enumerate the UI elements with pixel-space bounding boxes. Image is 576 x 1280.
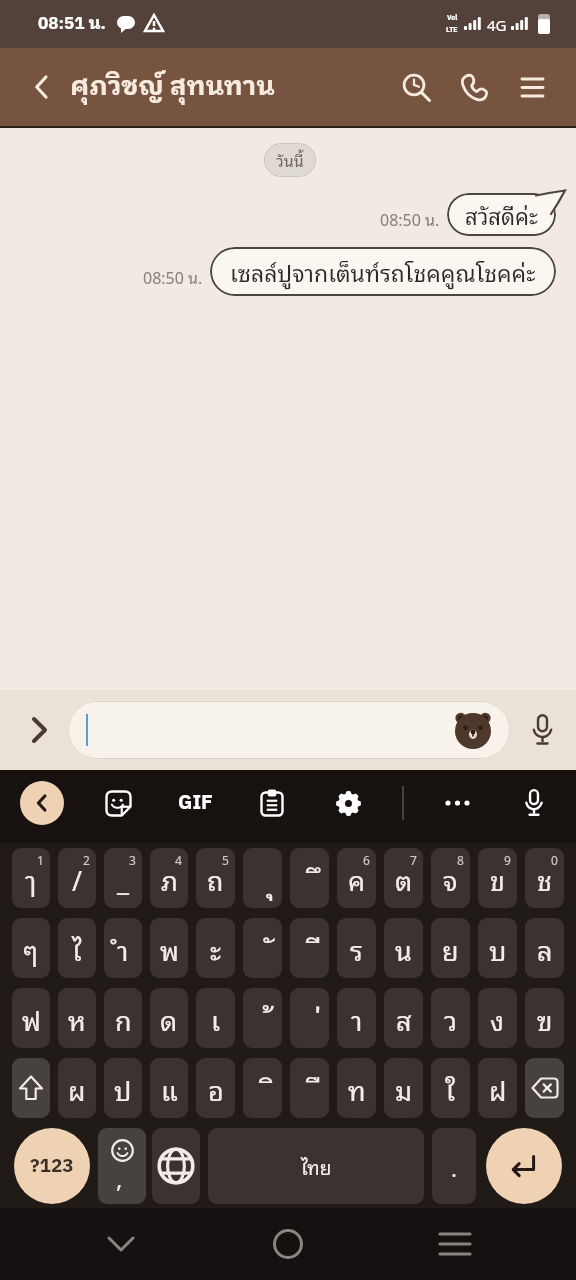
button[interactable] <box>433 1222 477 1266</box>
button[interactable] <box>486 1128 562 1204</box>
button[interactable]: ภ <box>150 848 188 908</box>
button[interactable]: ช <box>525 848 564 908</box>
button[interactable] <box>454 67 494 107</box>
button[interactable]: ๆ <box>12 918 50 978</box>
staticText: 2 <box>83 850 90 869</box>
button[interactable]: ว <box>431 988 470 1048</box>
staticText: ั <box>267 924 275 972</box>
staticText: ๆ <box>23 927 39 970</box>
button[interactable] <box>12 1058 50 1118</box>
staticText: สวัสดีค่ะ <box>465 197 538 232</box>
button[interactable]: ย <box>431 918 470 978</box>
button[interactable]: ใ <box>431 1058 470 1118</box>
button[interactable]: ฟ <box>12 988 50 1048</box>
button[interactable]: _ <box>104 848 142 908</box>
button[interactable]: ง <box>478 988 517 1048</box>
button[interactable]: . <box>432 1128 476 1204</box>
button[interactable]: ไทย <box>208 1128 424 1204</box>
button[interactable]: ถ <box>196 848 235 908</box>
staticText: / <box>72 857 83 900</box>
button[interactable]: ผ <box>58 1058 96 1118</box>
button[interactable] <box>152 1128 200 1204</box>
button[interactable] <box>20 781 64 825</box>
button[interactable]: า <box>337 988 376 1048</box>
staticText: ม <box>395 1067 413 1110</box>
button[interactable]: ส <box>384 988 423 1048</box>
staticText: ิ <box>267 1064 275 1112</box>
button[interactable] <box>522 710 562 750</box>
button[interactable]: แ <box>150 1058 188 1118</box>
button[interactable]: ห <box>58 988 96 1048</box>
button[interactable]: / <box>58 848 96 908</box>
staticText: า <box>351 997 363 1040</box>
button[interactable]: ล <box>525 918 564 978</box>
button[interactable]: ั <box>243 918 282 978</box>
staticText: 08:50 น. <box>380 206 440 232</box>
button[interactable]: วันนี้ <box>276 147 304 173</box>
button[interactable]: ำ <box>104 918 142 978</box>
staticText: ้ <box>267 994 275 1042</box>
button[interactable]: ค <box>337 848 376 908</box>
button[interactable]: ้ <box>243 988 282 1048</box>
button[interactable]: ึ <box>290 848 329 908</box>
staticText: LTE <box>446 24 458 36</box>
button[interactable]: ไ <box>58 918 96 978</box>
button[interactable]: บ <box>478 918 517 978</box>
staticText: ภ <box>161 857 178 900</box>
button[interactable]: ด <box>150 988 188 1048</box>
button[interactable]: ฃ <box>525 988 564 1048</box>
button[interactable] <box>512 67 552 107</box>
button[interactable]: ก <box>104 988 142 1048</box>
button[interactable]: ?123 <box>14 1128 90 1204</box>
button[interactable] <box>86 701 494 759</box>
button[interactable]: สวัสดีค่ะ <box>465 197 538 232</box>
button[interactable] <box>396 67 436 107</box>
button[interactable] <box>99 1222 143 1266</box>
staticText: จ <box>443 857 458 900</box>
button[interactable]: ข <box>478 848 517 908</box>
staticText: ล <box>537 927 553 970</box>
button[interactable] <box>250 781 294 825</box>
button[interactable] <box>266 1222 310 1266</box>
button[interactable]: , <box>98 1128 146 1204</box>
button[interactable]: ี <box>290 918 329 978</box>
button[interactable]: ่ <box>290 988 329 1048</box>
button[interactable]: น <box>384 918 423 978</box>
staticText: ื <box>314 1064 322 1112</box>
staticText: ย <box>442 927 459 970</box>
button[interactable]: จ <box>431 848 470 908</box>
button[interactable] <box>512 781 556 825</box>
button[interactable] <box>326 781 370 825</box>
button[interactable] <box>24 69 60 105</box>
button[interactable]: ร <box>337 918 376 978</box>
button[interactable]: ะ <box>196 918 235 978</box>
staticText: ผ <box>68 1067 86 1110</box>
button[interactable]: ุ <box>243 848 282 908</box>
staticText: 4G <box>487 12 507 36</box>
button[interactable] <box>525 1058 564 1118</box>
staticText: บ <box>489 927 507 970</box>
button[interactable]: ๅ <box>12 848 50 908</box>
staticText: . <box>451 1149 457 1184</box>
staticText: ต <box>395 857 413 900</box>
button[interactable] <box>436 781 480 825</box>
button[interactable]: ท <box>337 1058 376 1118</box>
staticText: ๅ <box>25 857 37 900</box>
button[interactable]: ป <box>104 1058 142 1118</box>
button[interactable]: ฝ <box>478 1058 517 1118</box>
button[interactable] <box>22 713 56 747</box>
button[interactable]: ม <box>384 1058 423 1118</box>
button[interactable]: ต <box>384 848 423 908</box>
staticText: ห <box>68 997 86 1040</box>
staticText: , <box>116 1158 123 1196</box>
button[interactable]: เซลล์ปูจากเต็นท์รถโชคคูณโชคค่ะ <box>230 253 536 290</box>
button[interactable]: เ <box>196 988 235 1048</box>
button[interactable]: GIF <box>172 780 218 826</box>
staticText: ฟ <box>22 997 41 1040</box>
button[interactable]: พ <box>150 918 188 978</box>
button[interactable]: ื <box>290 1058 329 1118</box>
staticText: ด <box>160 997 178 1040</box>
button[interactable]: ิ <box>243 1058 282 1118</box>
button[interactable]: อ <box>196 1058 235 1118</box>
button[interactable] <box>96 781 140 825</box>
